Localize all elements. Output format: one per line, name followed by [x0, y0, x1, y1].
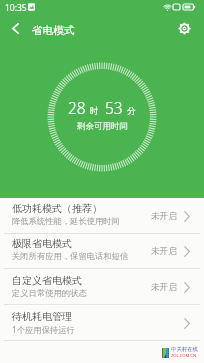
staticText: 10:35	[5, 2, 27, 14]
staticText: 省电模式	[32, 24, 75, 37]
button[interactable]: Back	[5, 18, 26, 39]
button[interactable]: Settings	[176, 20, 193, 37]
button[interactable]: 低功耗模式（推荐）	[0, 198, 204, 234]
staticText: 极限省电模式	[12, 237, 72, 250]
staticText: 未开启	[151, 246, 177, 257]
staticText: 自定义省电模式	[12, 274, 82, 287]
staticText: 分	[127, 106, 136, 117]
staticText: 53	[105, 97, 123, 118]
staticText: 低功耗模式（推荐）	[12, 202, 102, 215]
button[interactable]: 待机耗电管理	[0, 305, 204, 341]
staticText: 剩余可用时间	[77, 121, 128, 132]
staticText: ZOL.COM.CN	[171, 353, 197, 359]
staticText: 1个应用保持运行	[12, 324, 75, 335]
staticText: 降低系统性能，延长使用时间	[12, 216, 120, 226]
staticText: 定义日常使用的状态	[12, 288, 87, 298]
staticText: 未开启	[151, 211, 177, 222]
staticText: 待机耗电管理	[12, 310, 72, 323]
staticText: 中关村在线	[171, 346, 198, 353]
staticText: 关闭所有应用，保留电话和短信	[12, 251, 129, 261]
button[interactable]: 极限省电模式	[0, 234, 204, 269]
staticText: 未开启	[151, 282, 177, 293]
staticText: 28	[68, 97, 86, 118]
button[interactable]: 自定义省电模式	[0, 269, 204, 305]
staticText: 时	[90, 106, 99, 117]
